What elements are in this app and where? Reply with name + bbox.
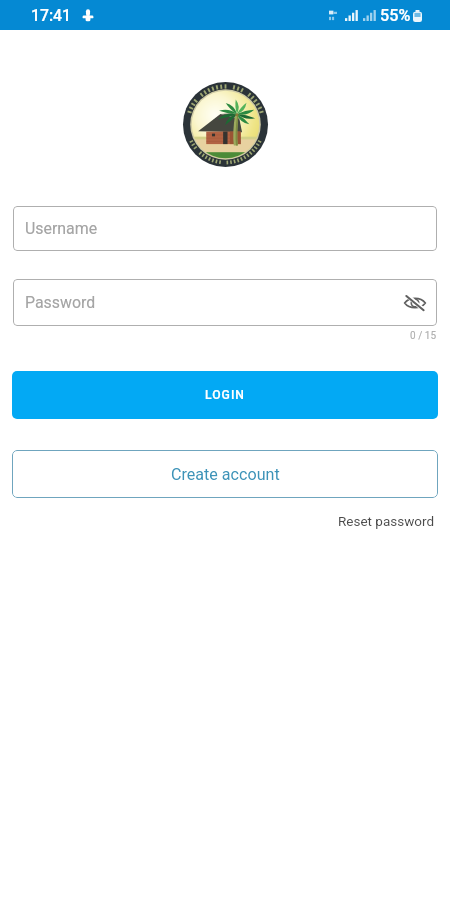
button[interactable]: Username: [13, 206, 437, 251]
staticText: LOGIN: [205, 388, 245, 402]
button[interactable]: Create account: [12, 450, 438, 498]
button[interactable]: LOGIN: [12, 371, 438, 419]
staticText: 55%: [380, 6, 411, 25]
staticText: Create account: [171, 465, 280, 484]
staticText: 17:41: [31, 6, 72, 25]
staticText: Username: [25, 219, 98, 238]
button[interactable]: Reset password: [330, 509, 443, 533]
staticText: Password: [25, 293, 96, 312]
staticText: Reset password: [338, 513, 435, 529]
button[interactable]: Toggle password visibility: [399, 287, 431, 319]
staticText: 0 / 15: [0, 330, 436, 342]
